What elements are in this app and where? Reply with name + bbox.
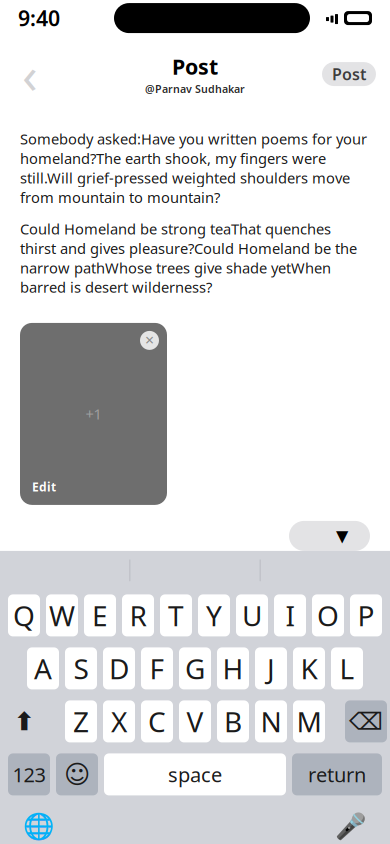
staticText: P [357, 597, 374, 634]
button[interactable]: Audience selector [289, 521, 370, 551]
staticText: space [168, 761, 222, 788]
button[interactable]: N [255, 700, 287, 742]
staticText: Could Homeland be strong teaThat quenche… [20, 219, 357, 297]
button[interactable]: P [350, 594, 382, 636]
staticText: ✕ [144, 334, 154, 347]
button[interactable]: Y [198, 594, 230, 636]
staticText: Z [73, 703, 89, 740]
staticText: S [73, 650, 88, 687]
staticText: Edit [32, 479, 56, 495]
button[interactable]: return [292, 753, 382, 795]
staticText: return [308, 761, 366, 788]
button[interactable]: L [331, 647, 363, 689]
button[interactable]: Post [322, 62, 376, 86]
button[interactable]: K [293, 647, 325, 689]
button[interactable]: A [27, 647, 59, 689]
button[interactable]: O [312, 594, 344, 636]
button[interactable]: Remove image [140, 331, 159, 350]
button[interactable]: M [293, 700, 325, 742]
staticText: 123 [12, 761, 45, 788]
staticText: ▼ [336, 527, 348, 545]
staticText: 🎤 [335, 812, 367, 841]
button[interactable]: U [236, 594, 268, 636]
button[interactable]: 123 [8, 753, 50, 795]
staticText: C [148, 703, 166, 740]
button[interactable]: X [103, 700, 135, 742]
staticText: 9:40 [18, 4, 60, 32]
staticText: F [149, 650, 164, 687]
staticText: Somebody asked:Have you written poems fo… [20, 129, 367, 207]
button[interactable]: Edit [30, 477, 58, 497]
button[interactable]: G [179, 647, 211, 689]
staticText: B [224, 703, 242, 740]
staticText: Q [13, 597, 35, 634]
button[interactable]: T [160, 594, 192, 636]
staticText: Post [172, 52, 218, 81]
staticText: J [267, 650, 275, 687]
staticText: W [49, 597, 75, 634]
staticText: ⌫ [349, 708, 383, 735]
staticText: K [300, 650, 317, 687]
button[interactable]: D [103, 647, 135, 689]
button[interactable]: Dictation [330, 805, 372, 844]
staticText: Y [206, 597, 222, 634]
button[interactable]: V [179, 700, 211, 742]
staticText: I [285, 597, 294, 634]
staticText: 🌐 [23, 812, 55, 841]
button[interactable]: B [217, 700, 249, 742]
button[interactable]: J [255, 647, 287, 689]
button[interactable]: H [217, 647, 249, 689]
button[interactable]: C [141, 700, 173, 742]
staticText: @Parnav Sudhakar [145, 82, 245, 96]
staticText: H [222, 650, 243, 687]
staticText: G [185, 650, 205, 687]
staticText: +1 [85, 404, 101, 424]
staticText: U [242, 597, 262, 634]
staticText: R [129, 597, 146, 634]
button[interactable]: Delete [345, 700, 387, 742]
staticText: X [111, 703, 127, 740]
button[interactable]: I [274, 594, 306, 636]
staticText: Post [332, 63, 366, 85]
button[interactable]: E [84, 594, 116, 636]
button[interactable]: Emoji [56, 753, 98, 795]
button[interactable]: F [141, 647, 173, 689]
staticText: ⬆ [13, 707, 34, 736]
button[interactable]: Z [65, 700, 97, 742]
staticText: ☺ [64, 760, 90, 789]
staticText: ‹ [22, 40, 38, 108]
staticText: O [317, 597, 339, 634]
button[interactable]: R [122, 594, 154, 636]
button[interactable]: W [46, 594, 78, 636]
staticText: A [34, 650, 52, 687]
button[interactable]: S [65, 647, 97, 689]
button[interactable]: Shift [3, 700, 45, 742]
staticText: D [109, 650, 129, 687]
button[interactable]: Back [8, 52, 52, 96]
staticText: V [186, 703, 203, 740]
staticText: T [168, 597, 184, 634]
staticText: L [339, 650, 354, 687]
staticText: M [296, 703, 321, 740]
staticText: E [92, 597, 108, 634]
button[interactable]: Q [8, 594, 40, 636]
button[interactable]: space [104, 753, 286, 795]
button[interactable]: Next keyboard [18, 805, 60, 844]
staticText: N [260, 703, 281, 740]
